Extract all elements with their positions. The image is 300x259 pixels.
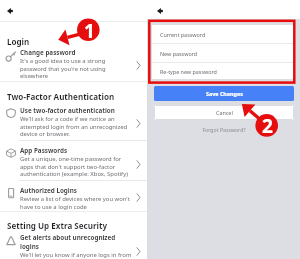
staticText: Forgot Password? xyxy=(202,126,246,133)
staticText: App Passwords xyxy=(20,146,68,155)
staticText: Two-Factor Authentication xyxy=(7,91,115,102)
staticText: New password xyxy=(160,50,198,57)
button[interactable]: Back xyxy=(7,8,14,14)
staticText: Authorized Logins xyxy=(20,186,77,195)
staticText: Get a unique, one-time password for apps… xyxy=(20,155,128,178)
staticText: Get alerts about unrecognized logins xyxy=(20,233,116,251)
staticText: Login xyxy=(7,36,30,47)
staticText: 1 xyxy=(84,18,95,42)
staticText: We'll ask for a code if we notice an att… xyxy=(20,115,128,138)
staticText: It's a good idea to use a strong passwor… xyxy=(20,57,106,80)
staticText: Cancel xyxy=(216,109,233,116)
staticText: We'll let you know if anyone logs in fro… xyxy=(20,251,132,259)
staticText: Review a list of devices where you won't… xyxy=(20,195,130,211)
button[interactable] xyxy=(0,230,147,259)
button[interactable]: Forgot Password? xyxy=(154,123,294,135)
staticText: Setting Up Extra Security xyxy=(7,220,108,231)
button[interactable] xyxy=(0,103,147,141)
staticText: Use two-factor authentication xyxy=(20,106,115,115)
button[interactable]: Back xyxy=(157,8,164,14)
button[interactable] xyxy=(0,183,147,209)
button[interactable]: Save Changes xyxy=(154,86,294,101)
staticText: Save Changes xyxy=(206,90,243,97)
staticText: 2 xyxy=(262,113,273,137)
staticText: Current password xyxy=(160,31,206,38)
button[interactable] xyxy=(0,45,147,78)
staticText: Re-type new password xyxy=(160,68,217,75)
staticText: Change password xyxy=(20,48,76,57)
button[interactable]: Cancel xyxy=(154,105,294,120)
button[interactable] xyxy=(0,143,147,181)
